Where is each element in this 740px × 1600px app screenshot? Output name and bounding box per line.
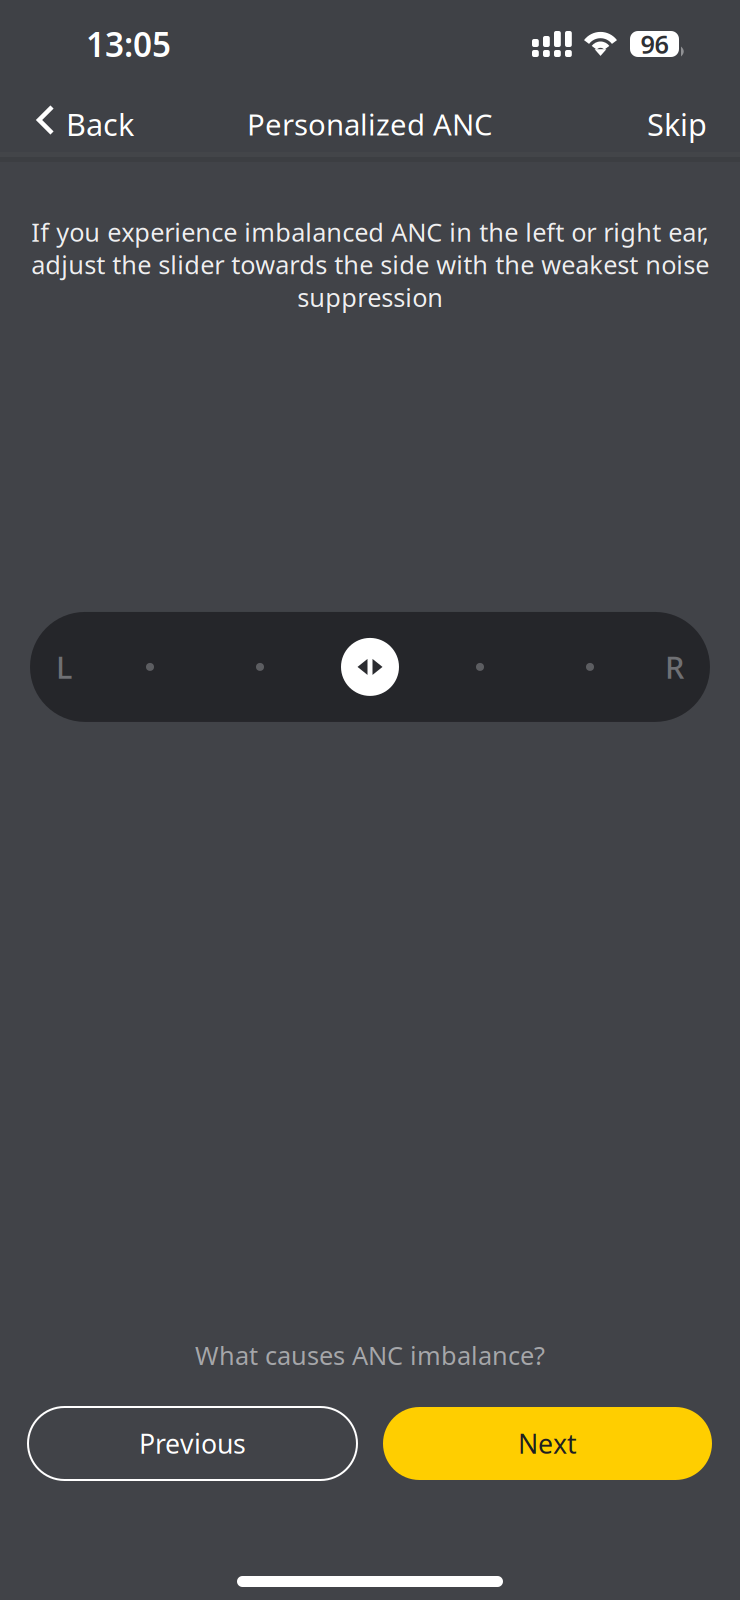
staticText: 96 [640,27,668,61]
staticText: Previous [139,1426,246,1461]
staticText: L [56,647,72,687]
button[interactable]: Skip [623,88,740,152]
staticText: Next [518,1426,577,1461]
button[interactable]: Back [0,88,158,152]
staticText: What causes ANC imbalance? [195,1338,545,1372]
staticText: Skip [647,104,707,144]
button[interactable]: Next [383,1407,712,1480]
staticText: Personalized ANC [247,104,493,143]
staticText: Back [66,104,134,144]
button[interactable]: What causes ANC imbalance? [179,1332,561,1378]
staticText: 13:05 [86,22,171,66]
button[interactable]: Previous [28,1407,357,1480]
staticText: R [665,647,684,687]
staticText: If you experience imbalanced ANC in the … [31,215,709,314]
button[interactable]: Left / right ANC balance [30,612,710,722]
